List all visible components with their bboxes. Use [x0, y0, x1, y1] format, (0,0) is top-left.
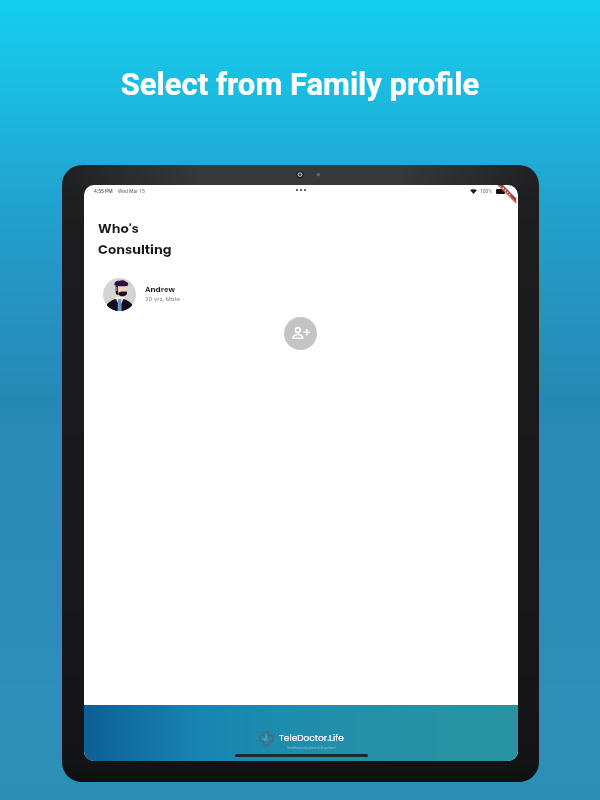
- staticText: Andrew: [145, 284, 175, 294]
- staticText: Consulting: [98, 240, 172, 258]
- button[interactable]: Andrew: [84, 276, 518, 313]
- staticText: Who's: [98, 219, 139, 237]
- staticText: 30 yrs, Male: [145, 295, 180, 303]
- staticText: Wed Mar 15: [118, 188, 145, 194]
- staticText: Select from Family profile: [0, 66, 600, 102]
- staticText: Healthcare Anytime & Anywhere!: [287, 746, 337, 750]
- staticText: TeleDoctor.Life: [279, 732, 344, 745]
- staticText: 4:55 PM: [94, 188, 113, 194]
- button[interactable]: Add family member: [284, 317, 317, 350]
- staticText: 100%: [480, 188, 493, 194]
